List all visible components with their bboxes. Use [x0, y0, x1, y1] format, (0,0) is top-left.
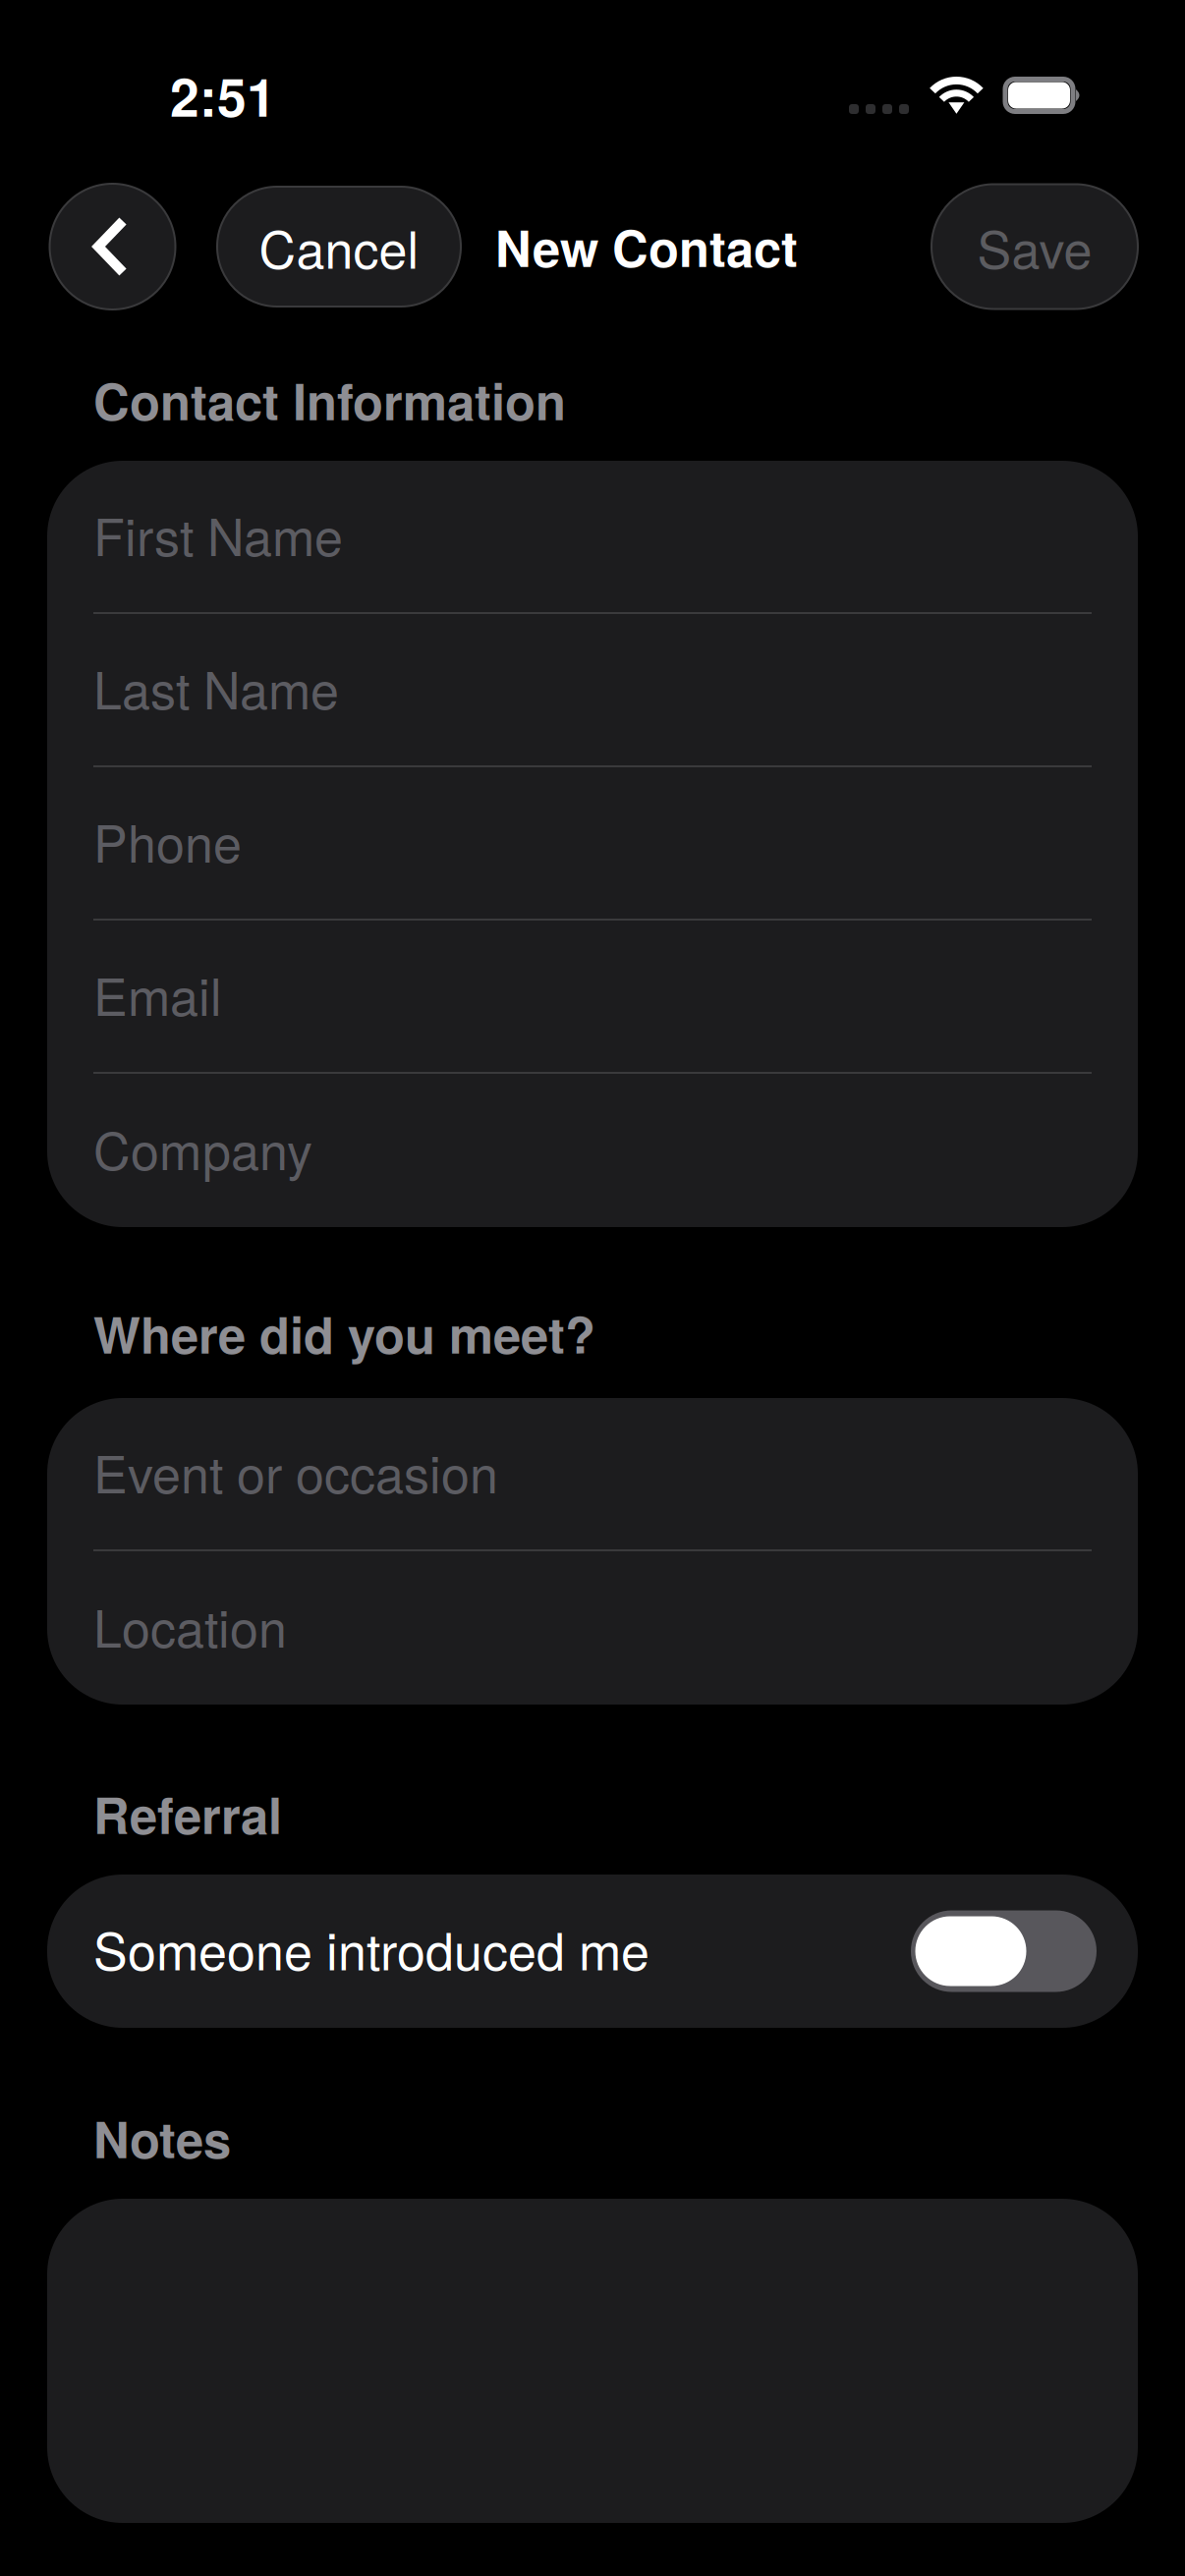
button[interactable]: Phone: [47, 767, 1138, 919]
staticText: Someone introduced me: [93, 1912, 649, 1985]
staticText: Where did you meet?: [93, 1298, 595, 1369]
staticText: Phone: [93, 804, 242, 877]
button[interactable]: Save: [931, 184, 1138, 309]
staticText: Referral: [93, 1778, 282, 1849]
staticText: Cancel: [259, 210, 419, 283]
staticText: First Name: [93, 497, 343, 571]
staticText: 2:51: [170, 58, 276, 133]
button[interactable]: Event or occasion: [47, 1398, 1138, 1549]
button[interactable]: Someone introduced me: [47, 1875, 1138, 2028]
button[interactable]: Cancel: [217, 187, 461, 307]
staticText: Email: [93, 957, 222, 1030]
staticText: Notes: [93, 2102, 231, 2173]
staticText: Contact Information: [93, 364, 566, 436]
staticText: Location: [93, 1589, 287, 1662]
button[interactable]: Back: [48, 184, 177, 309]
button[interactable]: First Name: [47, 461, 1138, 612]
button[interactable]: Location: [47, 1551, 1138, 1705]
staticText: Event or occasion: [93, 1435, 498, 1508]
button[interactable]: Email: [47, 921, 1138, 1072]
staticText: Last Name: [93, 651, 339, 724]
staticText: New Contact: [495, 211, 798, 282]
button[interactable]: Notes: [47, 2199, 1138, 2523]
staticText: Save: [977, 210, 1092, 283]
button[interactable]: Last Name: [47, 614, 1138, 765]
staticText: Company: [93, 1111, 312, 1185]
button[interactable]: Company: [47, 1074, 1138, 1227]
